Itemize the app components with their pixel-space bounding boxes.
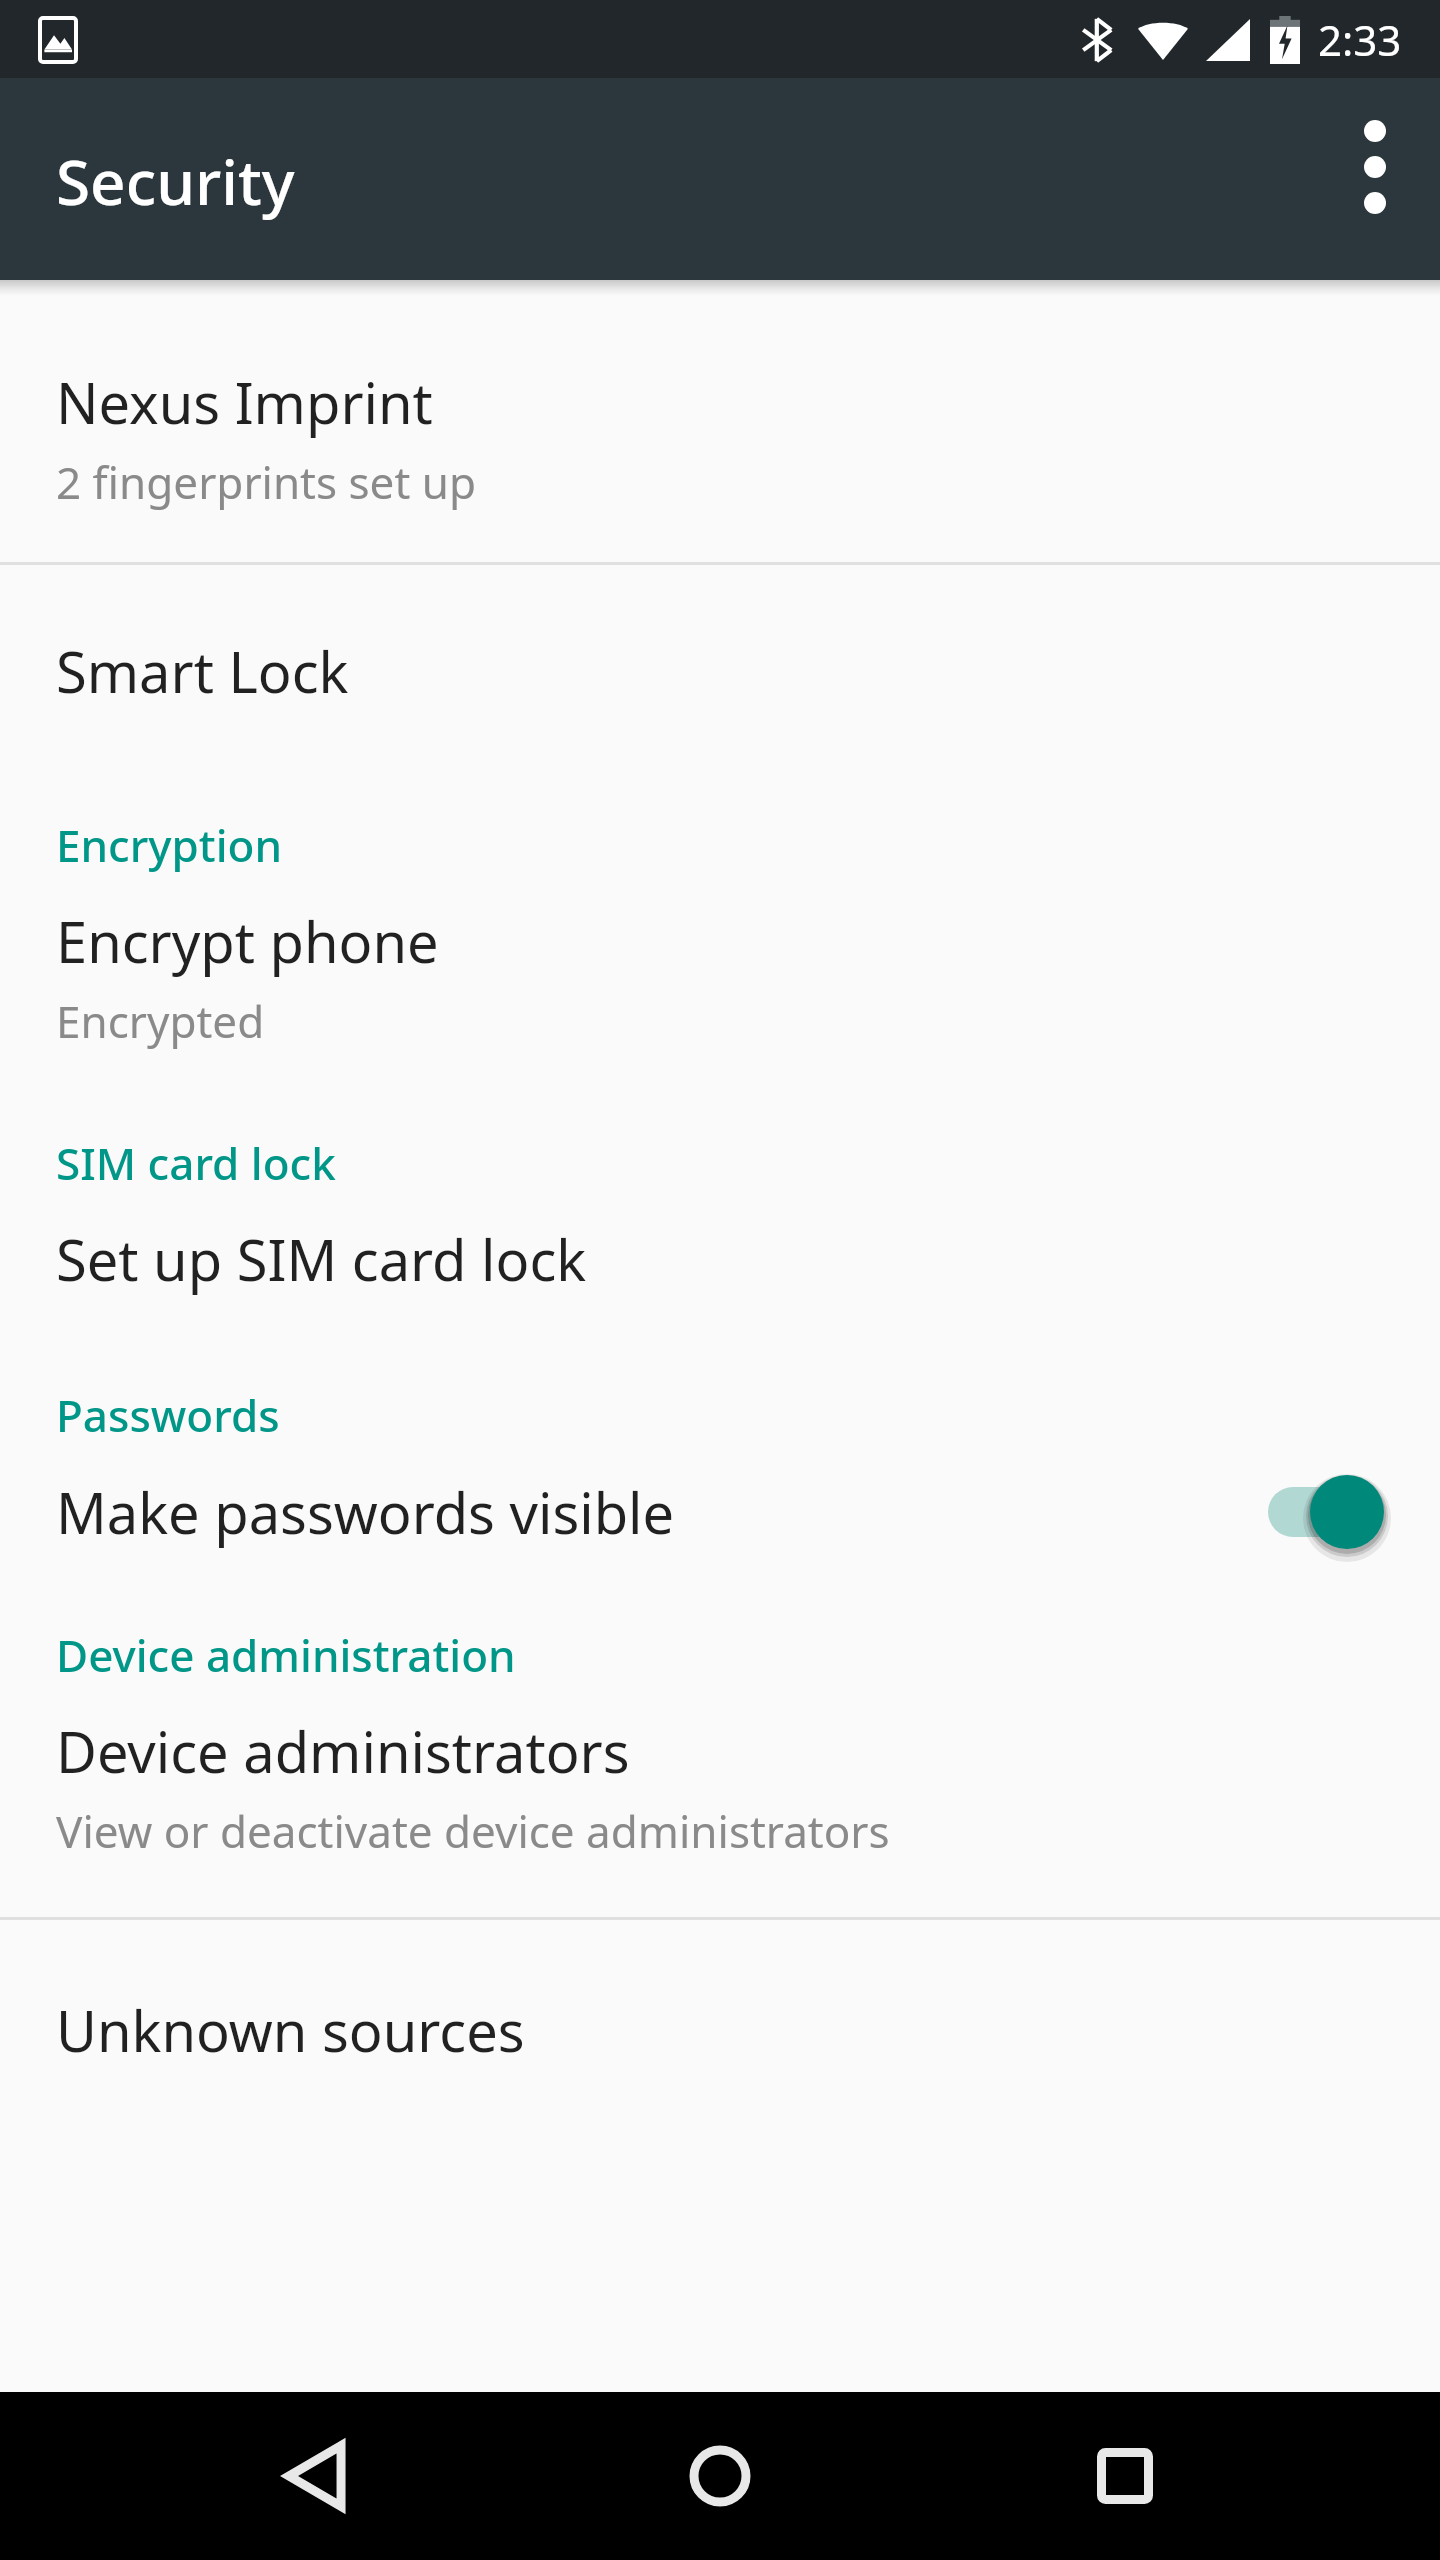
button[interactable]: Recent apps [1035, 2392, 1215, 2560]
staticText: Encrypted [56, 991, 265, 1051]
button[interactable]: Back [225, 2392, 405, 2560]
button[interactable]: Set up SIM card lock [0, 1199, 1440, 1359]
button[interactable]: More options [1310, 102, 1440, 232]
staticText: View or deactivate device administrators [56, 1801, 890, 1861]
staticText: SIM card lock [56, 1133, 336, 1193]
staticText: Make passwords visible [56, 1474, 1262, 1550]
button[interactable]: Make passwords visible [0, 1451, 1440, 1599]
staticText: 2 fingerprints set up [56, 452, 476, 512]
button[interactable]: Nexus Imprint [0, 312, 1440, 562]
staticText: Unknown sources [56, 1992, 525, 2068]
staticText: Encryption [56, 815, 283, 875]
button[interactable]: Encrypt phone [0, 881, 1440, 1107]
staticText: Device administrators [56, 1713, 630, 1789]
button[interactable]: Device administrators [0, 1691, 1440, 1917]
staticText: Device administration [56, 1625, 516, 1685]
staticText: Nexus Imprint [56, 364, 433, 440]
staticText: 2:33 [1318, 11, 1402, 68]
staticText: Passwords [56, 1385, 280, 1445]
staticText: Set up SIM card lock [56, 1221, 587, 1297]
button[interactable]: Smart Lock [0, 565, 1440, 789]
button[interactable]: Home [630, 2392, 810, 2560]
button[interactable]: Unknown sources [0, 1920, 1440, 2128]
staticText: Security [56, 139, 295, 223]
staticText: Encrypt phone [56, 903, 439, 979]
staticText: Smart Lock [56, 633, 349, 709]
